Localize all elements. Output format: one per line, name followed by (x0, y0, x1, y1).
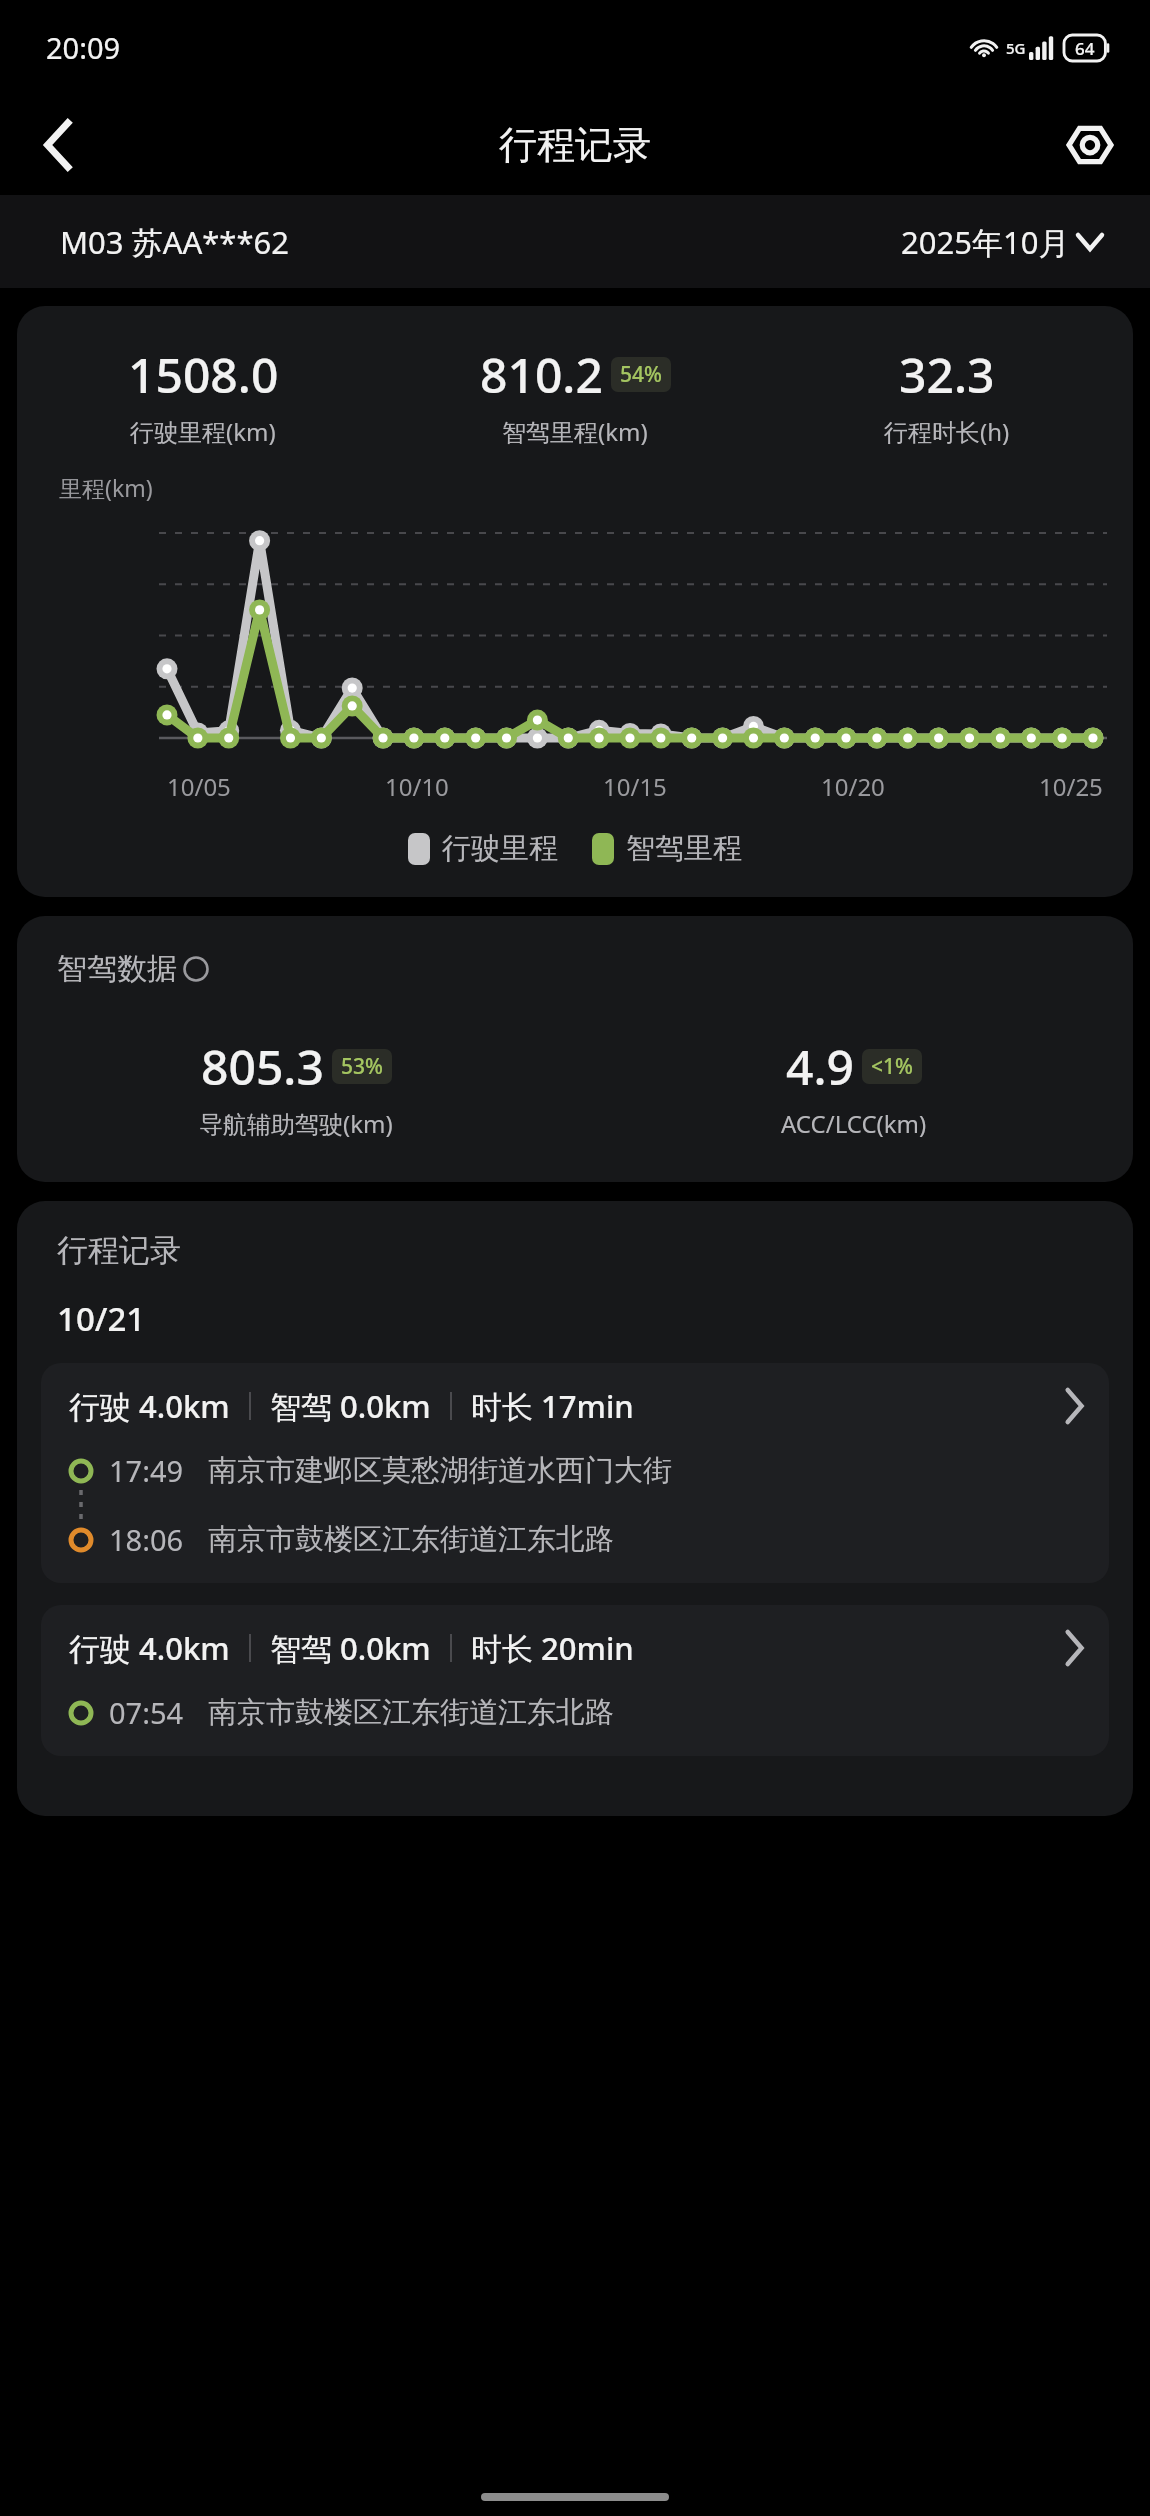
staticText: 智驾里程 (626, 830, 742, 867)
button[interactable]: 1508.0 (17, 306, 1133, 897)
staticText: 行程记录 (57, 1231, 181, 1270)
staticText: 53% (341, 1052, 383, 1081)
staticText: 行驶 4.0km (69, 1385, 230, 1427)
staticText: 10/21 (57, 1296, 146, 1341)
staticText: 10/25 (1039, 770, 1103, 803)
staticText: 32.3 (899, 342, 995, 407)
staticText: 智驾数据 (57, 950, 177, 988)
staticText: 10/15 (603, 770, 667, 803)
staticText: 54% (620, 360, 662, 389)
staticText: 智驾里程(km) (502, 415, 648, 448)
staticText: 南京市鼓楼区江东街道江东北路 (208, 1521, 614, 1558)
staticText: 时长 20min (471, 1627, 634, 1669)
staticText: 64 (1075, 37, 1095, 60)
staticText: 行驶里程(km) (130, 415, 276, 448)
staticText: 10/05 (167, 770, 231, 803)
staticText: 17:49 (109, 1451, 184, 1490)
staticText: 810.2 (480, 342, 603, 407)
staticText: 时长 17min (471, 1385, 634, 1427)
staticText: 2025年10月 (901, 221, 1070, 263)
staticText: 行驶 4.0km (69, 1627, 230, 1669)
staticText: 10/10 (385, 770, 449, 803)
staticText: 南京市鼓楼区江东街道江东北路 (208, 1694, 614, 1731)
staticText: 行程时长(h) (884, 415, 1010, 448)
button[interactable]: 智驾数据 (17, 916, 1133, 1182)
staticText: 智驾 0.0km (270, 1627, 431, 1669)
staticText: 里程(km) (59, 472, 153, 503)
button[interactable]: 行驶 4.0km (41, 1363, 1109, 1583)
staticText: 18:06 (109, 1520, 184, 1559)
staticText: M03 苏AA***62 (60, 221, 289, 263)
staticText: 南京市建邺区莫愁湖街道水西门大街 (208, 1452, 672, 1489)
staticText: 行程记录 (499, 121, 651, 169)
staticText: 导航辅助驾驶(km) (199, 1107, 393, 1140)
staticText: ACC/LCC(km) (781, 1107, 927, 1140)
button[interactable]: Settings (1052, 107, 1128, 183)
staticText: 20:09 (46, 28, 121, 67)
staticText: 智驾 0.0km (270, 1385, 431, 1427)
button[interactable]: 2025年10月 (901, 221, 1102, 263)
button[interactable]: Back (20, 107, 96, 183)
staticText: 07:54 (109, 1693, 184, 1732)
staticText: 4.9 (786, 1034, 854, 1099)
staticText: 10/20 (821, 770, 885, 803)
staticText: <1% (871, 1052, 913, 1081)
staticText: 5G (1006, 38, 1026, 58)
button[interactable]: 行驶 4.0km (41, 1605, 1109, 1756)
staticText: 805.3 (201, 1034, 324, 1099)
staticText: 1508.0 (128, 342, 279, 407)
staticText: 行驶里程 (442, 830, 558, 867)
